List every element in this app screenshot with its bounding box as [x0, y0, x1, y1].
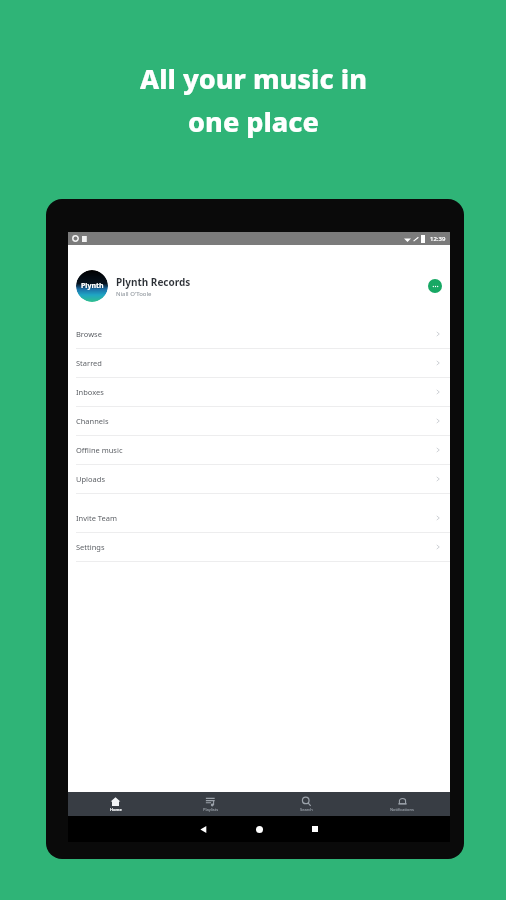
staticText: Settings: [76, 542, 105, 552]
button[interactable]: Settings: [68, 533, 450, 561]
staticText: Offline music: [76, 445, 123, 455]
staticText: Home: [110, 807, 122, 812]
staticText: 12:39: [430, 235, 446, 243]
staticText: Channels: [76, 416, 109, 426]
button[interactable]: Playlists: [163, 792, 258, 816]
button[interactable]: More options: [428, 279, 442, 293]
button[interactable]: Back: [190, 816, 216, 842]
button[interactable]: Recent apps: [302, 816, 328, 842]
button[interactable]: Channels: [68, 407, 450, 435]
button[interactable]: Uploads: [68, 465, 450, 493]
button[interactable]: Starred: [68, 349, 450, 377]
button[interactable]: Home: [246, 816, 272, 842]
button[interactable]: Home: [68, 792, 163, 816]
button[interactable]: Invite Team: [68, 504, 450, 532]
staticText: Plynth: [81, 281, 104, 291]
button[interactable]: Plynth: [68, 268, 450, 304]
button[interactable]: Search: [258, 792, 354, 816]
staticText: Browse: [76, 329, 102, 339]
staticText: Notifications: [390, 807, 414, 812]
staticText: Plynth Records: [116, 275, 191, 289]
staticText: Starred: [76, 358, 102, 368]
staticText: Search: [300, 807, 313, 812]
button[interactable]: Browse: [68, 320, 450, 348]
staticText: Invite Team: [76, 513, 117, 523]
button[interactable]: Inboxes: [68, 378, 450, 406]
staticText: Niall O'Toole: [116, 290, 152, 298]
button[interactable]: Notifications: [354, 792, 450, 816]
staticText: one place: [188, 103, 319, 140]
staticText: Playlists: [203, 807, 219, 812]
staticText: Inboxes: [76, 387, 104, 397]
button[interactable]: Offline music: [68, 436, 450, 464]
staticText: All your music in: [140, 60, 367, 97]
staticText: Uploads: [76, 474, 105, 484]
